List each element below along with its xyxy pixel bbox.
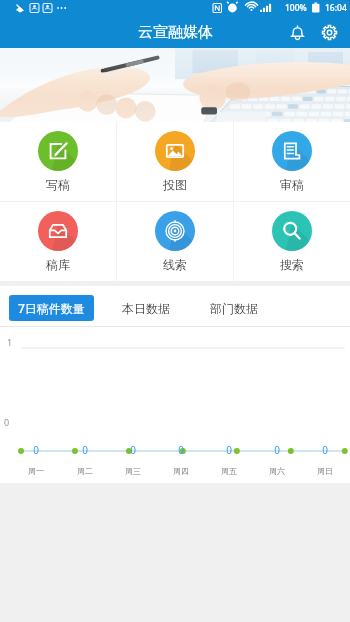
staticText: 0 bbox=[322, 443, 328, 457]
staticText: 周五 bbox=[221, 466, 237, 476]
button[interactable]: 投图 bbox=[117, 122, 233, 201]
staticText: 100% bbox=[285, 2, 307, 14]
staticText: 周三 bbox=[125, 466, 141, 476]
button[interactable]: Notifications bbox=[282, 17, 312, 47]
staticText: 周日 bbox=[317, 466, 333, 476]
staticText: 线索 bbox=[163, 257, 187, 272]
button[interactable]: 部门数据 bbox=[204, 296, 264, 321]
staticText: 稿库 bbox=[46, 257, 70, 272]
staticText: 0 bbox=[82, 443, 88, 457]
staticText: 部门数据 bbox=[210, 301, 258, 316]
staticText: 写稿 bbox=[46, 177, 70, 192]
staticText: 0 bbox=[226, 443, 232, 457]
staticText: 审稿 bbox=[280, 177, 304, 192]
staticText: 搜索 bbox=[280, 257, 304, 272]
staticText: 周六 bbox=[269, 466, 285, 476]
button[interactable]: 搜索 bbox=[234, 202, 350, 281]
button[interactable]: 线索 bbox=[117, 202, 233, 281]
staticText: 0 bbox=[130, 443, 136, 457]
staticText: 7日稿件数量 bbox=[18, 300, 85, 316]
staticText: 0 bbox=[274, 443, 280, 457]
staticText: 云宣融媒体 bbox=[138, 23, 213, 42]
button[interactable]: 本日数据 bbox=[116, 296, 176, 321]
staticText: 周一 bbox=[28, 466, 44, 476]
staticText: 投图 bbox=[163, 177, 187, 192]
staticText: 1 bbox=[7, 336, 13, 348]
button[interactable]: 审稿 bbox=[234, 122, 350, 201]
button[interactable]: 写稿 bbox=[0, 122, 116, 201]
button[interactable]: Settings bbox=[314, 17, 344, 47]
staticText: 0 bbox=[178, 443, 184, 457]
staticText: 本日数据 bbox=[122, 301, 170, 316]
button[interactable]: 7日稿件数量 bbox=[9, 295, 94, 321]
staticText: 0 bbox=[4, 416, 10, 428]
staticText: 周四 bbox=[173, 466, 189, 476]
staticText: 周二 bbox=[77, 466, 93, 476]
button[interactable]: 稿库 bbox=[0, 202, 116, 281]
staticText: 16:04 bbox=[325, 2, 347, 14]
staticText: 0 bbox=[33, 443, 39, 457]
